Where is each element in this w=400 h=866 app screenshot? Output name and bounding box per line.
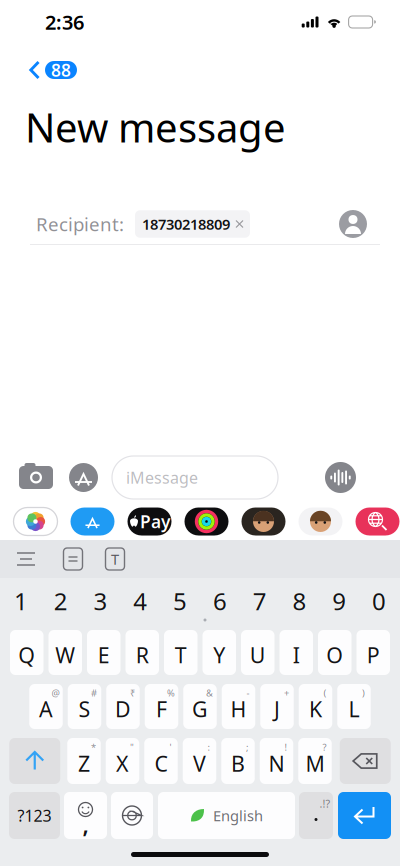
- button[interactable]: U: [241, 630, 274, 675]
- staticText: English: [213, 806, 263, 825]
- button[interactable]: I: [279, 630, 313, 675]
- button[interactable]: X: [106, 738, 139, 784]
- button[interactable]: P: [356, 630, 390, 675]
- staticText: ): [362, 687, 365, 699]
- staticText: @: [51, 687, 59, 699]
- button[interactable]: Clipboard: [52, 540, 94, 578]
- button[interactable]: Memoji 2: [298, 507, 342, 535]
- staticText: #: [91, 687, 97, 699]
- staticText: 0: [372, 585, 386, 617]
- button[interactable]: B: [221, 738, 255, 784]
- staticText: ,: [82, 809, 88, 839]
- button[interactable]: S: [68, 684, 101, 729]
- button[interactable]: Shift: [9, 738, 60, 784]
- button[interactable]: F: [145, 684, 178, 729]
- staticText: P: [367, 641, 380, 669]
- button[interactable]: K: [299, 684, 332, 729]
- button[interactable]: V: [183, 738, 216, 784]
- staticText: S: [78, 695, 90, 723]
- button[interactable]: Emoji and comma: [64, 792, 107, 839]
- staticText: W: [55, 641, 75, 669]
- button[interactable]: Text formatting: [0, 540, 52, 578]
- button[interactable]: Add contact: [338, 209, 368, 239]
- staticText: C: [154, 749, 167, 778]
- staticText: 6: [213, 585, 227, 617]
- staticText: D: [115, 695, 131, 723]
- staticText: 18730218809: [142, 214, 230, 234]
- staticText: Z: [78, 749, 90, 778]
- staticText: I: [293, 641, 300, 669]
- staticText: J: [274, 695, 280, 723]
- button[interactable]: G: [183, 684, 217, 729]
- button[interactable]: M: [298, 738, 332, 784]
- button[interactable]: O: [318, 630, 351, 675]
- button[interactable]: iMessage: [112, 456, 278, 499]
- button[interactable]: 5: [160, 585, 200, 617]
- button[interactable]: Fitness: [184, 507, 228, 535]
- button[interactable]: W: [48, 630, 82, 675]
- staticText: H: [230, 695, 246, 723]
- button[interactable]: C: [144, 738, 178, 784]
- staticText: F: [156, 695, 167, 723]
- staticText: R: [136, 641, 149, 669]
- button[interactable]: T: [164, 630, 197, 675]
- staticText: &: [206, 687, 213, 699]
- button[interactable]: E: [87, 630, 120, 675]
- button[interactable]: 3: [81, 585, 120, 617]
- button[interactable]: English: [158, 792, 295, 839]
- staticText: (: [323, 687, 326, 699]
- button[interactable]: A: [29, 684, 63, 729]
- button[interactable]: Memoji: [241, 507, 285, 535]
- button[interactable]: 1: [1, 585, 41, 617]
- button[interactable]: Photos: [13, 507, 57, 535]
- button[interactable]: 7: [240, 585, 280, 617]
- staticText: Recipient:: [36, 212, 124, 236]
- staticText: 2:36: [45, 9, 84, 35]
- button[interactable]: Camera: [18, 462, 54, 492]
- button[interactable]: Return: [338, 792, 391, 839]
- staticText: E: [98, 641, 110, 669]
- button[interactable]: H: [222, 684, 255, 729]
- button[interactable]: Z: [67, 738, 101, 784]
- staticText: N: [268, 749, 284, 778]
- staticText: ?: [322, 741, 326, 753]
- button[interactable]: Q: [10, 630, 43, 675]
- button[interactable]: ?123: [9, 792, 60, 839]
- staticText: 4: [133, 585, 147, 617]
- button[interactable]: 9: [319, 585, 359, 617]
- button[interactable]: 8: [280, 585, 319, 617]
- button[interactable]: L: [337, 684, 371, 729]
- button[interactable]: J: [260, 684, 294, 729]
- button[interactable]: Y: [202, 630, 236, 675]
- staticText: 9: [332, 585, 346, 617]
- staticText: 8: [292, 585, 306, 617]
- staticText: 3: [93, 585, 107, 617]
- button[interactable]: Apple Pay: [127, 507, 171, 535]
- staticText: V: [193, 749, 206, 778]
- staticText: !: [284, 741, 287, 753]
- button[interactable]: iMessage apps: [69, 463, 98, 492]
- button[interactable]: 4: [120, 585, 160, 617]
- button[interactable]: Switch keyboard: [111, 792, 153, 839]
- button[interactable]: Images: [355, 507, 399, 535]
- staticText: ?123: [17, 805, 51, 826]
- button[interactable]: D: [106, 684, 140, 729]
- button[interactable]: App Store: [70, 507, 114, 535]
- staticText: L: [348, 695, 359, 723]
- staticText: T: [111, 549, 119, 569]
- button[interactable]: N: [260, 738, 293, 784]
- button[interactable]: 2: [41, 585, 81, 617]
- staticText: :: [207, 741, 210, 753]
- staticText: 2: [54, 585, 68, 617]
- button[interactable]: 6: [200, 585, 240, 617]
- button[interactable]: Record audio: [325, 462, 356, 493]
- button[interactable]: Delete: [340, 738, 391, 784]
- staticText: ;: [246, 741, 249, 753]
- staticText: Pay: [140, 510, 170, 533]
- button[interactable]: 88: [0, 54, 93, 86]
- button[interactable]: Period: [299, 792, 333, 839]
- button[interactable]: R: [125, 630, 159, 675]
- staticText: Q: [18, 641, 35, 669]
- button[interactable]: 0: [359, 585, 399, 617]
- button[interactable]: Text tools: [94, 540, 136, 578]
